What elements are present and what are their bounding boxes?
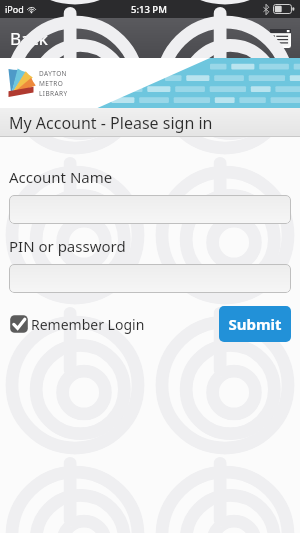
staticText: Back [10,27,48,50]
button[interactable]: Back [0,21,60,56]
staticText: METRO [39,79,64,88]
staticText: iPod [5,3,24,15]
button[interactable]: Menu [268,26,292,50]
button[interactable]: Submit [219,306,291,342]
staticText: LIBRARY [39,89,68,98]
staticText: My Account - Please sign in [9,112,213,134]
button[interactable]: Remember Login [9,312,145,336]
button[interactable] [9,195,291,224]
button[interactable] [9,264,291,293]
staticText: Submit [228,314,282,334]
staticText: Account Name [9,167,113,187]
staticText: 5:13 PM [131,3,167,16]
staticText: DAYTON [39,69,67,78]
staticText: Remember Login [31,315,145,334]
staticText: PIN or password [9,236,126,256]
